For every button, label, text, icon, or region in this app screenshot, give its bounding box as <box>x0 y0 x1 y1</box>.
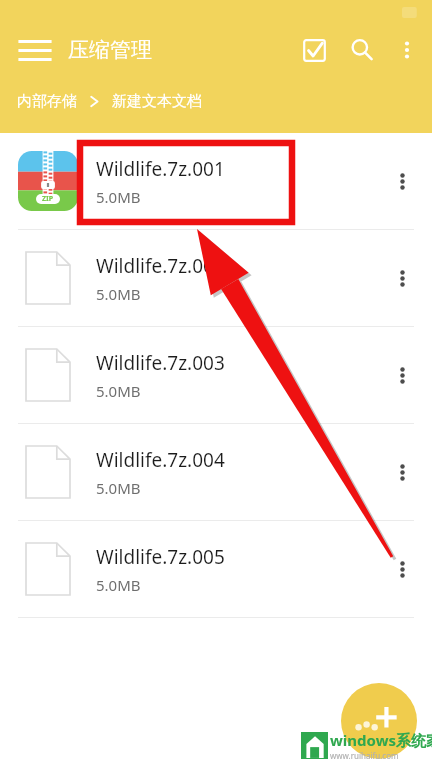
staticText: windows系统家园 <box>330 730 432 750</box>
button[interactable]: Search <box>338 26 386 74</box>
button[interactable]: Wildlife.7z.002 <box>0 230 432 326</box>
button[interactable]: Wildlife.7z.003 <box>0 327 432 423</box>
staticText: Wildlife.7z.003 <box>96 350 225 376</box>
staticText: 5.0MB <box>96 478 141 498</box>
button[interactable]: Item options <box>378 545 426 593</box>
button[interactable]: Item options <box>378 254 426 302</box>
button[interactable]: Navigation menu <box>10 25 60 75</box>
staticText: 5.0MB <box>96 381 141 401</box>
button[interactable]: 内部存储 <box>17 92 202 111</box>
staticText: 5.0MB <box>96 284 141 304</box>
staticText: Wildlife.7z.001 <box>96 156 225 182</box>
staticText: Wildlife.7z.002 <box>96 253 225 279</box>
button[interactable]: More options <box>386 29 428 71</box>
button[interactable]: ZIP <box>0 133 432 229</box>
button[interactable]: Wildlife.7z.004 <box>0 424 432 520</box>
button[interactable]: Item options <box>378 448 426 496</box>
button[interactable]: Wildlife.7z.005 <box>0 521 432 617</box>
staticText: Wildlife.7z.005 <box>96 544 225 570</box>
button[interactable]: Add archive <box>341 683 417 759</box>
staticText: 压缩管理 <box>68 37 152 63</box>
staticText: 新建文本文档 <box>112 92 202 111</box>
staticText: 内部存储 <box>17 92 77 111</box>
staticText: ZIP <box>42 194 54 204</box>
button[interactable]: Item options <box>378 351 426 399</box>
staticText: 5.0MB <box>96 187 141 207</box>
staticText: www.ruihaifu.com <box>330 750 399 761</box>
staticText: Wildlife.7z.004 <box>96 447 225 473</box>
button[interactable]: Item options <box>378 157 426 205</box>
button[interactable]: Select items <box>290 26 338 74</box>
staticText: 5.0MB <box>96 575 141 595</box>
